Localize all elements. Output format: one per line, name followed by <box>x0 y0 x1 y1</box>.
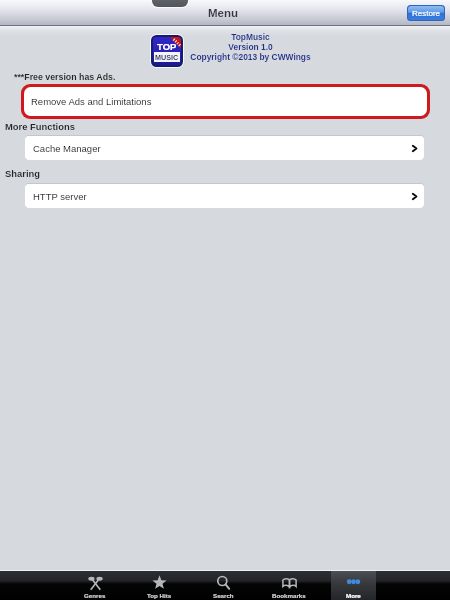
staticText: More Functions <box>5 121 75 132</box>
staticText: HTTP server <box>33 191 87 202</box>
staticText: TOP <box>157 41 177 52</box>
button[interactable]: Genres <box>63 571 127 600</box>
button[interactable]: Top Hits <box>127 571 191 600</box>
staticText: Version 1.0 <box>228 42 273 51</box>
staticText: ***Free version has Ads. <box>14 72 116 82</box>
button[interactable]: More <box>321 571 386 600</box>
staticText: Copyright ©2013 by CWWings <box>190 52 311 61</box>
staticText: TopMusic <box>231 32 270 41</box>
staticText: Bookmarks <box>272 592 306 599</box>
button[interactable]: HTTP server <box>25 184 424 208</box>
button[interactable]: Restore <box>408 6 444 20</box>
staticText: Cache Manager <box>33 143 101 154</box>
staticText: Sharing <box>5 168 40 179</box>
button[interactable]: Cache Manager <box>25 136 424 160</box>
staticText: Top Hits <box>147 592 172 599</box>
staticText: Genres <box>84 592 106 599</box>
staticText: Remove Ads and Limitations <box>31 96 152 107</box>
staticText: Search <box>213 592 234 599</box>
staticText: Restore <box>412 9 441 18</box>
button[interactable]: Remove Ads and Limitations <box>24 87 427 116</box>
staticText: MUSIC <box>155 53 179 61</box>
button[interactable]: Search <box>191 571 256 600</box>
staticText: Menu <box>208 7 239 20</box>
button[interactable]: Bookmarks <box>256 571 321 600</box>
staticText: More <box>346 592 361 599</box>
